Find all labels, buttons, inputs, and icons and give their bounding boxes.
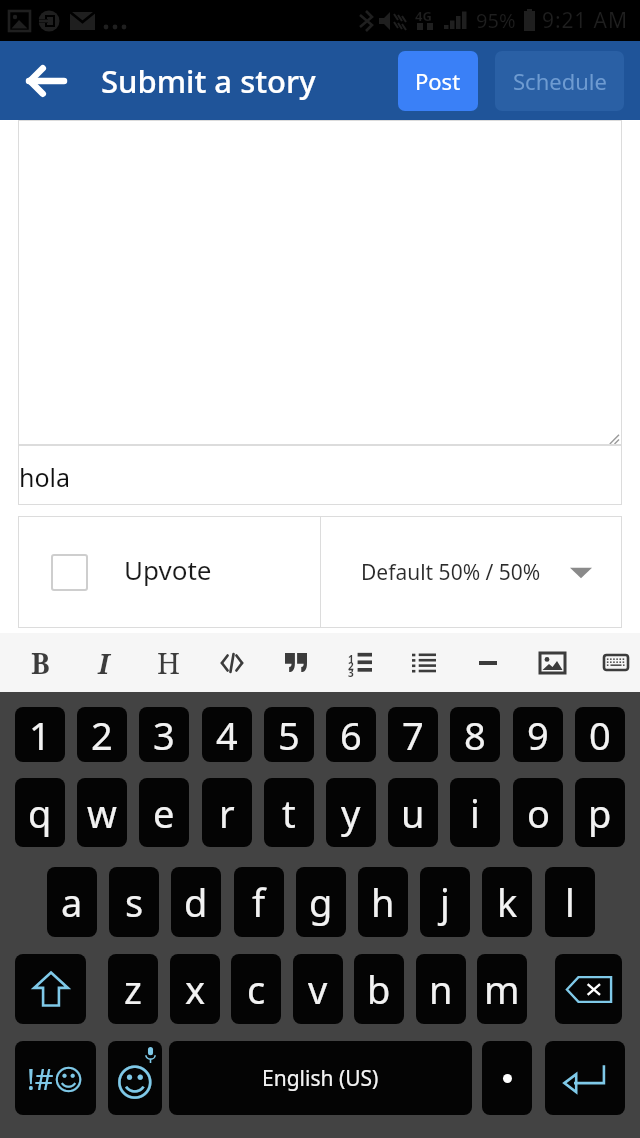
staticText: 4: [216, 709, 238, 761]
button[interactable]: r: [202, 778, 252, 847]
button[interactable]: Space: [169, 1041, 472, 1115]
button[interactable]: Shift: [15, 954, 86, 1024]
staticText: 8: [464, 709, 486, 761]
staticText: s: [125, 876, 144, 928]
button[interactable]: Heading: [136, 633, 200, 692]
button[interactable]: Quote: [264, 633, 328, 692]
button[interactable]: Backspace: [555, 954, 622, 1024]
button[interactable]: 5: [264, 707, 314, 762]
button[interactable]: 9: [513, 707, 563, 762]
staticText: f: [252, 876, 266, 928]
staticText: Post: [415, 66, 461, 96]
button[interactable]: 1: [15, 707, 65, 762]
staticText: i: [470, 787, 480, 839]
button[interactable]: 4: [202, 707, 252, 762]
button[interactable]: Post: [398, 51, 478, 111]
staticText: B: [31, 644, 50, 682]
button[interactable]: z: [108, 954, 158, 1024]
button[interactable]: f: [234, 867, 284, 937]
staticText: Default 50% / 50%: [361, 558, 541, 587]
button[interactable]: hola: [18, 445, 622, 505]
button[interactable]: s: [109, 867, 159, 937]
staticText: Submit a story: [101, 60, 316, 102]
button[interactable]: o: [513, 778, 563, 847]
button[interactable]: i: [450, 778, 500, 847]
staticText: v: [308, 963, 328, 1015]
button[interactable]: a: [47, 867, 97, 937]
button[interactable]: Bulleted list: [392, 633, 456, 692]
button[interactable]: Period: [482, 1041, 532, 1115]
staticText: 3: [153, 709, 175, 761]
button[interactable]: 3: [139, 707, 189, 762]
button[interactable]: Code: [200, 633, 264, 692]
staticText: 95%: [476, 7, 516, 34]
staticText: Upvote: [124, 552, 212, 587]
button[interactable]: w: [77, 778, 127, 847]
button[interactable]: k: [482, 867, 532, 937]
button[interactable]: q: [15, 778, 65, 847]
button[interactable]: Enter: [545, 1041, 625, 1115]
button[interactable]: v: [293, 954, 343, 1024]
button[interactable]: Symbols: [15, 1041, 96, 1115]
button[interactable]: t: [264, 778, 314, 847]
staticText: c: [247, 963, 266, 1015]
staticText: k: [497, 876, 518, 928]
staticText: 7: [402, 709, 424, 761]
staticText: 5: [278, 709, 300, 761]
button[interactable]: 8: [450, 707, 500, 762]
button[interactable]: d: [171, 867, 221, 937]
staticText: g: [309, 876, 333, 928]
button[interactable]: Emoji: [108, 1041, 162, 1115]
staticText: e: [153, 787, 175, 839]
staticText: y: [341, 787, 361, 839]
staticText: m: [484, 963, 520, 1015]
button[interactable]: j: [420, 867, 470, 937]
button[interactable]: Horizontal rule: [456, 633, 520, 692]
button[interactable]: Insert image: [520, 633, 584, 692]
button[interactable]: c: [231, 954, 281, 1024]
button[interactable]: n: [416, 954, 466, 1024]
button[interactable]: Back: [0, 41, 92, 120]
staticText: 2: [348, 659, 354, 673]
staticText: p: [588, 787, 612, 839]
button[interactable]: Keyboard: [584, 633, 640, 692]
button[interactable]: b: [354, 954, 404, 1024]
staticText: x: [185, 963, 206, 1015]
staticText: o: [527, 787, 550, 839]
staticText: hola: [19, 460, 71, 494]
staticText: ☺: [115, 1061, 155, 1105]
button[interactable]: p: [575, 778, 625, 847]
staticText: 0: [589, 709, 611, 761]
staticText: r: [219, 787, 235, 839]
staticText: j: [440, 876, 450, 928]
button[interactable]: Bold: [8, 633, 72, 692]
button[interactable]: 0: [575, 707, 625, 762]
staticText: n: [429, 963, 453, 1015]
button[interactable]: Italic: [72, 633, 136, 692]
button[interactable]: h: [358, 867, 408, 937]
button[interactable]: [18, 120, 622, 445]
button[interactable]: Default 50% / 50%: [321, 516, 622, 628]
button[interactable]: Upvote: [18, 516, 320, 628]
button[interactable]: Schedule: [495, 51, 624, 111]
button[interactable]: l: [545, 867, 595, 937]
staticText: d: [184, 876, 208, 928]
button[interactable]: e: [139, 778, 189, 847]
button[interactable]: 6: [326, 707, 376, 762]
staticText: h: [371, 876, 395, 928]
button[interactable]: 7: [388, 707, 438, 762]
button[interactable]: x: [170, 954, 220, 1024]
staticText: 3: [348, 666, 354, 680]
staticText: b: [367, 963, 391, 1015]
staticText: 1: [29, 709, 51, 761]
button[interactable]: g: [296, 867, 346, 937]
staticText: Schedule: [513, 66, 607, 96]
staticText: I: [98, 644, 110, 682]
button[interactable]: m: [477, 954, 527, 1024]
button[interactable]: 2: [77, 707, 127, 762]
button[interactable]: u: [388, 778, 438, 847]
button[interactable]: y: [326, 778, 376, 847]
button[interactable]: Numbered list: [328, 633, 392, 692]
staticText: 9: [527, 709, 549, 761]
staticText: w: [87, 787, 117, 839]
